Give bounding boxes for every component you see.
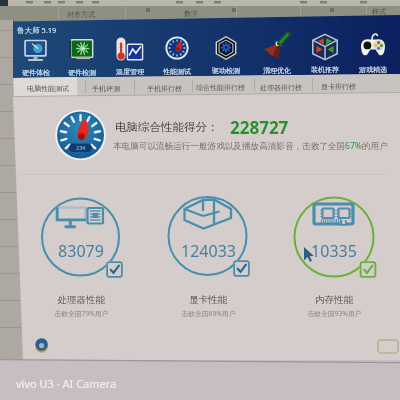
staticText: 鲁大师 5.19: [17, 25, 57, 35]
staticText: 驱动检测: [212, 66, 240, 75]
staticText: 综合性能排行榜: [196, 83, 245, 92]
staticText: 电脑综合性能得分：: [115, 120, 219, 134]
staticText: 本电脑可以流畅运行一般游戏以及播放高清影音，击败了全国67%的用户: [113, 140, 388, 152]
button[interactable]: 83079: [36, 240, 126, 262]
staticText: 手机排行榜: [147, 84, 182, 93]
button[interactable]: 驱动检测: [203, 64, 249, 76]
button[interactable]: 手机排行榜: [147, 84, 182, 97]
button[interactable]: 装机推荐: [302, 63, 348, 75]
staticText: 显卡排行榜: [321, 82, 356, 91]
button[interactable]: 硬件体检: [13, 66, 59, 78]
staticText: 数字: [184, 9, 198, 18]
staticText: 击败全国79%用户: [54, 309, 109, 318]
staticText: 游戏精选: [359, 65, 387, 74]
staticText: 清理优化: [263, 66, 291, 75]
button[interactable]: 鲁大师 5.19: [17, 25, 57, 35]
staticText: 124033: [181, 240, 236, 262]
staticText: 234: [76, 144, 86, 151]
button[interactable]: 综合性能排行榜: [196, 83, 245, 96]
staticText: 装机推荐: [311, 65, 339, 74]
staticText: 击败全国69%用户: [181, 309, 236, 318]
staticText: 228727: [230, 116, 289, 139]
staticText: 显卡性能: [189, 294, 227, 306]
staticText: 对齐方式: [67, 10, 95, 19]
staticText: vivo U3 · AI Camera: [16, 376, 117, 391]
button[interactable]: 硬件检测: [59, 66, 105, 78]
staticText: 内存性能: [315, 294, 353, 306]
staticText: 性能测试: [163, 67, 191, 76]
button[interactable]: 手机评测: [92, 84, 120, 97]
staticText: 83079: [58, 240, 104, 262]
button[interactable]: 游戏精选: [350, 63, 396, 75]
staticText: 击败全国93%用户: [307, 309, 362, 318]
button[interactable]: 处理器排行榜: [260, 83, 302, 96]
staticText: 10335: [311, 240, 357, 262]
button[interactable]: 性能测试: [154, 65, 200, 77]
staticText: 处理器性能: [57, 294, 105, 306]
staticText: 硬件体检: [22, 68, 50, 77]
button[interactable]: 显卡排行榜: [321, 82, 356, 95]
staticText: 硬件检测: [68, 68, 96, 77]
staticText: 手机评测: [92, 84, 120, 93]
button[interactable]: 124033: [163, 240, 253, 262]
staticText: 处理器排行榜: [260, 83, 302, 92]
button[interactable]: 温度管理: [107, 65, 153, 77]
button[interactable]: 10335: [289, 240, 379, 262]
button[interactable]: 清理优化: [254, 64, 300, 76]
button[interactable]: 电脑性能测试: [27, 84, 69, 97]
staticText: 电脑性能测试: [27, 84, 69, 93]
staticText: 温度管理: [116, 67, 144, 76]
staticText: 样式: [372, 7, 386, 16]
